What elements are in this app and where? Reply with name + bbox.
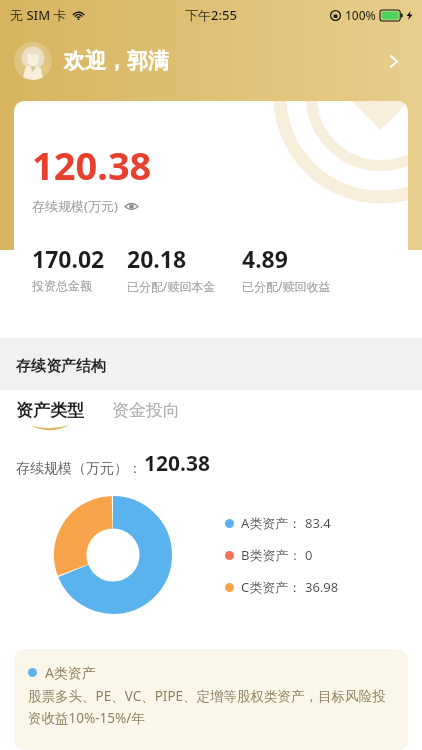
staticText: 36.98: [305, 578, 339, 596]
staticText: 无 SIM 卡: [10, 6, 67, 24]
staticText: 4.89: [242, 243, 288, 274]
staticText: 存续规模（万元）：: [16, 460, 142, 478]
staticText: 投资总金额: [32, 278, 92, 293]
staticText: 0: [305, 546, 313, 564]
button[interactable]: 4.89: [242, 243, 331, 294]
staticText: 120.38: [32, 139, 152, 191]
staticText: 存续资产结构: [16, 357, 106, 376]
staticText: 资金投向: [112, 400, 180, 421]
staticText: 100%: [345, 7, 376, 23]
staticText: 已分配/赎回本金: [127, 278, 216, 294]
staticText: 股票多头、PE、VC、PIPE、定增等股权类资产，目标风险投资收益10%-15%…: [28, 687, 394, 727]
button[interactable]: 显示或隐藏金额: [123, 198, 139, 214]
staticText: 资产类型: [16, 400, 84, 421]
button[interactable]: A类资产：: [225, 514, 331, 532]
button[interactable]: 120.38: [14, 101, 408, 321]
staticText: 下午2:55: [185, 6, 237, 24]
button[interactable]: C类资产：: [225, 578, 339, 596]
button[interactable]: A类资产: [14, 649, 408, 750]
staticText: 20.18: [127, 243, 187, 274]
button[interactable]: 20.18: [127, 243, 216, 294]
button[interactable]: 170.02: [32, 243, 105, 293]
staticText: 已分配/赎回收益: [242, 278, 331, 294]
staticText: A类资产: [45, 663, 96, 682]
button[interactable]: 资产类型: [16, 400, 84, 433]
button[interactable]: 资金投向: [112, 400, 180, 433]
staticText: 83.4: [305, 514, 331, 532]
staticText: C类资产：: [241, 578, 302, 596]
button[interactable]: 欢迎，郭满: [0, 30, 422, 92]
button[interactable]: 进入个人中心: [378, 46, 408, 76]
staticText: 存续规模(万元): [32, 197, 118, 215]
staticText: 170.02: [32, 243, 105, 274]
staticText: B类资产：: [241, 546, 302, 564]
staticText: A类资产：: [241, 514, 302, 532]
button[interactable]: B类资产：: [225, 546, 313, 564]
staticText: 120.38: [144, 449, 210, 478]
staticText: 欢迎，郭满: [64, 48, 169, 74]
